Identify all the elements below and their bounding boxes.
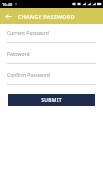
staticText: SUBMIT [41,97,62,104]
staticText: Current Password [7,30,49,37]
staticText: 16:40 [2,2,13,7]
staticText: Confirm Password [7,72,50,79]
button[interactable]: Password [0,51,103,64]
staticText: CHANGE PASSWORD [18,13,75,20]
staticText: Password [7,51,30,58]
button[interactable]: SUBMIT [8,94,95,106]
button[interactable]: Confirm Password [0,72,103,85]
button[interactable]: Current Password [0,30,103,43]
button[interactable]: Back [3,11,14,22]
